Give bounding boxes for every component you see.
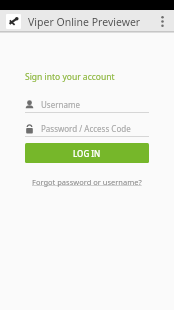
button[interactable]: Forgot password or username? — [28, 175, 146, 189]
staticText: Sign into your account — [25, 71, 115, 83]
staticText: Password / Access Code — [41, 123, 131, 134]
staticText: LOG IN — [73, 148, 101, 159]
staticText: Username — [41, 99, 80, 110]
button[interactable]: LOG IN — [25, 143, 149, 163]
button[interactable]: Password field — [25, 121, 149, 137]
staticText: Viper Online Previewer — [28, 15, 141, 29]
staticText: Forgot password or username? — [32, 177, 142, 187]
button[interactable]: More options — [154, 10, 170, 33]
button[interactable]: Username field — [25, 97, 149, 113]
